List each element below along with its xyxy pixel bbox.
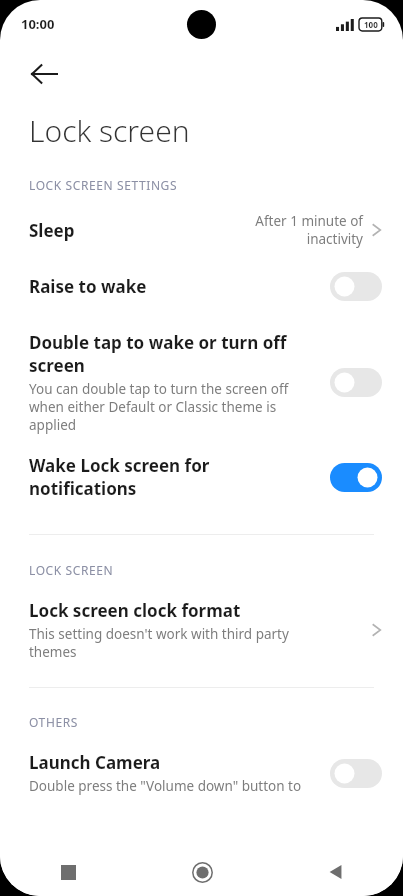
staticText: Wake Lock screen for notifications [29,454,210,500]
staticText: You can double tap to turn the screen of… [29,380,289,434]
button[interactable]: Double tap to wake or turn off screen [0,331,403,434]
button[interactable]: Back [314,850,358,894]
staticText: Launch Camera [29,751,161,774]
staticText: LOCK SCREEN SETTINGS [29,177,178,193]
staticText: This setting doesn't work with third par… [29,625,289,661]
button[interactable]: Enabled [330,463,382,492]
button[interactable]: Sleep [0,206,403,254]
button[interactable]: Wake Lock screen for notifications [0,454,403,500]
button[interactable]: Disabled [330,759,382,788]
staticText: Lock screen [29,110,190,151]
staticText: 100 [364,19,378,30]
button[interactable]: Disabled [330,368,382,397]
staticText: Lock screen clock format [29,599,241,622]
button[interactable]: Launch Camera [0,751,403,795]
button[interactable]: Recent apps [46,850,90,894]
staticText: Raise to wake [29,275,147,298]
button[interactable]: Home [180,850,224,894]
staticText: Double tap to wake or turn off screen [29,331,287,377]
staticText: After 1 minute of inactivity [245,212,363,248]
staticText: Sleep [29,219,245,242]
button[interactable]: Disabled [330,272,382,301]
button[interactable]: Lock screen clock format [0,599,403,661]
staticText: Double press the "Volume down" button to [29,777,302,795]
staticText: LOCK SCREEN [29,562,114,578]
staticText: OTHERS [29,714,78,730]
staticText: 10:00 [21,15,55,33]
button[interactable]: Raise to wake [0,272,403,301]
button[interactable]: Back [18,48,70,100]
